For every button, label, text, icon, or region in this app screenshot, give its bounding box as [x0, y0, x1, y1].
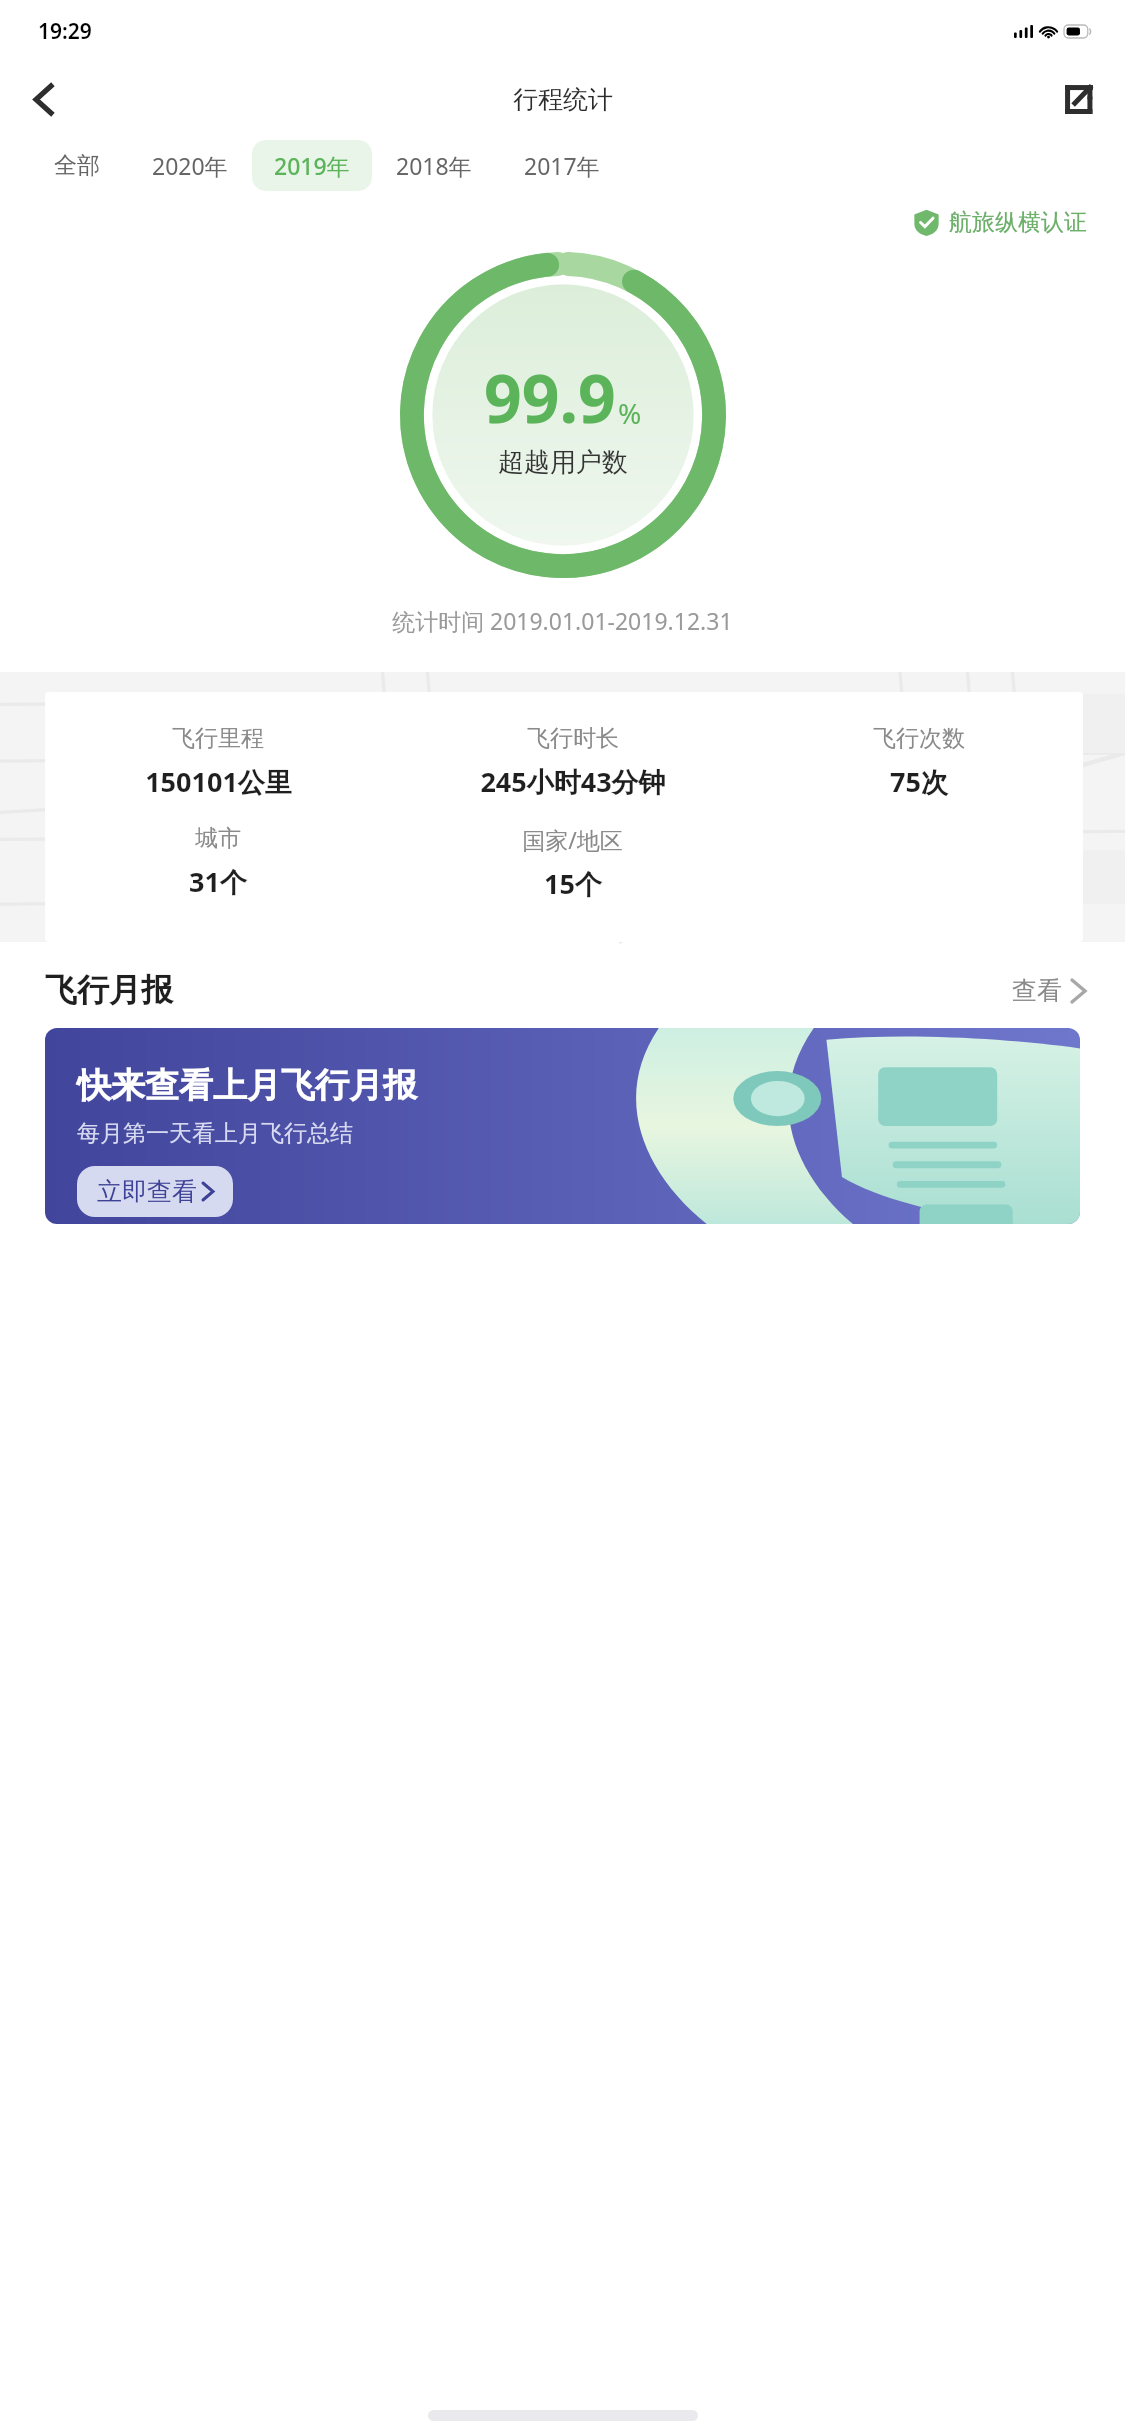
- staticText: 150101公里: [145, 763, 292, 800]
- button[interactable]: 飞行里程: [45, 692, 1083, 942]
- button[interactable]: 查看: [1012, 975, 1085, 1006]
- staticText: 2020年: [152, 150, 228, 181]
- staticText: 75次: [890, 763, 948, 800]
- staticText: 飞行里程: [172, 724, 264, 753]
- button[interactable]: 立即查看: [77, 1166, 233, 1217]
- staticText: 2017年: [524, 150, 600, 181]
- button[interactable]: 2017年: [510, 140, 614, 191]
- button[interactable]: 全部: [40, 141, 114, 190]
- staticText: 超越用户数: [498, 446, 628, 479]
- button[interactable]: 快来查看上月飞行月报: [45, 1028, 1080, 1224]
- staticText: 245小时43分钟: [480, 763, 666, 800]
- staticText: 航旅纵横认证: [949, 208, 1087, 237]
- button[interactable]: Share: [1033, 62, 1125, 136]
- staticText: 全部: [54, 151, 100, 180]
- staticText: 城市: [195, 824, 241, 853]
- button[interactable]: 2019年: [252, 140, 372, 191]
- staticText: 国家/地区: [522, 824, 623, 855]
- staticText: 查看: [1012, 975, 1062, 1006]
- staticText: 2018年: [396, 150, 472, 181]
- staticText: 统计时间 2019.01.01-2019.12.31: [392, 605, 733, 636]
- button[interactable]: 2018年: [382, 140, 486, 191]
- staticText: 2019年: [274, 150, 350, 181]
- staticText: 快来查看上月飞行月报: [77, 1064, 417, 1107]
- staticText: 行程统计: [513, 84, 613, 115]
- staticText: 飞行月报: [45, 970, 173, 1010]
- button[interactable]: Back: [0, 62, 86, 136]
- staticText: 99.9: [484, 352, 616, 442]
- staticText: 31个: [189, 863, 247, 900]
- staticText: %: [618, 394, 642, 432]
- staticText: 15个: [544, 865, 602, 902]
- staticText: 飞行次数: [873, 724, 965, 753]
- staticText: 每月第一天看上月飞行总结: [77, 1119, 353, 1148]
- button[interactable]: 航旅纵横认证: [913, 208, 1087, 237]
- staticText: 飞行时长: [527, 724, 619, 753]
- staticText: 19:29: [38, 17, 92, 46]
- button[interactable]: 2020年: [138, 140, 242, 191]
- staticText: 立即查看: [97, 1176, 197, 1207]
